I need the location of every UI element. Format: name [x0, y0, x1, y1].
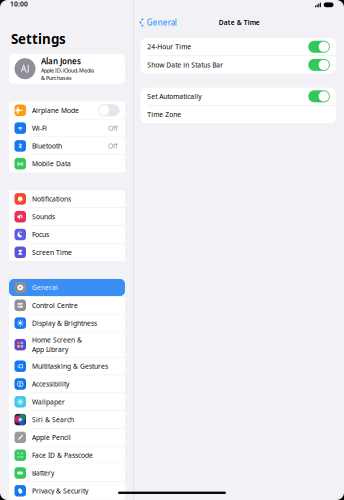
staticText: Show Date in Status Bar — [147, 60, 223, 69]
button[interactable]: Set Automatically — [141, 88, 336, 105]
button[interactable]: Sounds — [9, 208, 125, 225]
staticText: General — [147, 17, 177, 28]
button[interactable]: Wallpaper — [9, 393, 125, 410]
staticText: Wallpaper — [32, 397, 65, 406]
staticText: Multitasking & Gestures — [32, 362, 108, 371]
staticText: Siri & Search — [32, 415, 74, 424]
button[interactable]: Show Date in Status Bar — [141, 56, 336, 74]
button[interactable]: Wi-Fi — [9, 119, 125, 137]
staticText: Time Zone — [147, 110, 181, 119]
button[interactable]: Apple Pencil — [9, 429, 125, 446]
staticText: Control Centre — [32, 301, 78, 310]
staticText: Mobile Data — [32, 159, 71, 168]
staticText: Bluetooth — [32, 141, 62, 150]
button[interactable]: Display & Brightness — [9, 314, 125, 332]
button[interactable]: Control Centre — [9, 297, 125, 314]
staticText: Apple Pencil — [32, 433, 71, 442]
button[interactable]: Time Zone — [141, 106, 336, 123]
staticText: Battery — [32, 469, 54, 477]
staticText: Face ID & Passcode — [32, 451, 93, 460]
button[interactable]: 24-Hour Time — [141, 38, 336, 55]
staticText: Set Automatically — [147, 92, 201, 101]
button[interactable]: Face ID & Passcode — [9, 447, 125, 464]
button[interactable]: AJ — [9, 54, 125, 84]
staticText: Accessibility — [32, 380, 69, 388]
staticText: & Purchases — [41, 74, 72, 81]
button[interactable]: Privacy & Security — [9, 482, 125, 499]
staticText: Sounds — [32, 212, 55, 221]
staticText: Off — [108, 124, 118, 133]
staticText: Airplane Mode — [32, 106, 79, 115]
staticText: Screen Time — [32, 248, 72, 257]
staticText: Focus — [32, 230, 49, 239]
staticText: Display & Brightness — [32, 319, 97, 328]
staticText: Off — [108, 141, 118, 150]
button[interactable]: Multitasking & Gestures — [9, 358, 125, 375]
staticText: Alan Jones — [41, 56, 81, 66]
staticText: General — [32, 283, 58, 292]
button[interactable]: Battery — [9, 464, 125, 482]
button[interactable]: Notifications — [9, 190, 125, 207]
button[interactable]: Accessibility — [9, 375, 125, 393]
button[interactable]: General — [134, 15, 177, 30]
staticText: AJ — [21, 63, 29, 74]
staticText: Date & Time — [219, 18, 260, 27]
button[interactable]: Siri & Search — [9, 411, 125, 428]
button[interactable]: Focus — [9, 226, 125, 243]
staticText: Wi-Fi — [32, 124, 47, 133]
staticText: Settings — [11, 30, 66, 48]
staticText: Home Screen & — [32, 335, 82, 344]
staticText: 24-Hour Time — [147, 42, 191, 51]
staticText: App Library — [32, 345, 68, 354]
button[interactable]: Screen Time — [9, 244, 125, 261]
button[interactable]: Mobile Data — [9, 155, 125, 172]
button[interactable]: Bluetooth — [9, 137, 125, 154]
staticText: Privacy & Security — [32, 486, 88, 495]
button[interactable]: Airplane Mode — [9, 102, 125, 119]
staticText: Apple ID, iCloud, Media — [41, 67, 94, 74]
button[interactable]: General — [9, 279, 125, 296]
staticText: 10:00 — [10, 0, 28, 8]
button[interactable]: Home Screen & — [9, 332, 125, 357]
staticText: Notifications — [32, 194, 71, 203]
